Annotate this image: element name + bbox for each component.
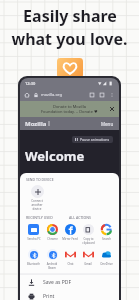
staticText: Print [43,293,55,300]
staticText: Search [102,237,111,241]
staticText: Easily share [23,5,117,27]
staticText: Android Beam [43,262,61,270]
staticText: Bluetooth [27,262,40,266]
staticText: Gmail [84,262,92,266]
staticText: Save as PDF [43,279,71,286]
button[interactable]: Gmail [79,248,97,266]
button[interactable]: Copy to clipboard [79,223,97,245]
staticText: RECENTLY USED [26,215,53,220]
button[interactable]: Android Beam [43,248,61,270]
button[interactable]: Search [97,223,115,241]
button[interactable]: Close [109,106,115,112]
staticText: OneDrive [100,262,113,266]
staticText: Mirror Feed [62,237,78,241]
staticText: mozilla.org [41,92,62,97]
button[interactable]: Print [20,289,119,300]
button[interactable]: Pause animations [75,137,110,142]
staticText: Menu [101,121,114,127]
button[interactable]: Save as PDF [20,275,119,289]
button[interactable]: Connect another device [26,185,48,211]
staticText: Mozilla [25,120,47,128]
button[interactable]: Mirror Feed [61,223,79,241]
staticText: Pause animations [80,137,110,142]
staticText: SEND TO DEVICE [26,177,54,182]
button[interactable]: Sencha PC [24,223,43,241]
button[interactable]: More [109,92,115,98]
staticText: Foundation today. – Donate ♥ [41,109,98,114]
button[interactable]: Bluetooth [24,248,43,266]
button[interactable]: Secure [33,92,39,98]
button[interactable]: Chrome [43,223,61,241]
staticText: 12:30 [25,81,36,86]
button[interactable]: OneDrive [97,248,115,266]
button[interactable]: Chat [61,248,79,266]
staticText: Sencha PC [27,237,41,241]
staticText: Copy to clipboard [82,237,95,245]
staticText: Chrome [47,237,58,241]
button[interactable]: Bookmarks [99,92,105,98]
staticText: Connect another device [26,199,48,211]
staticText: Donate to Mozilla [53,104,86,109]
staticText: Welcome [25,147,85,165]
staticText: ALL ACTIONS [69,215,91,220]
staticText: what you love. [11,28,128,50]
button[interactable]: Tabs [89,92,95,98]
button[interactable]: Home [24,92,30,98]
staticText: Chat [67,262,74,266]
